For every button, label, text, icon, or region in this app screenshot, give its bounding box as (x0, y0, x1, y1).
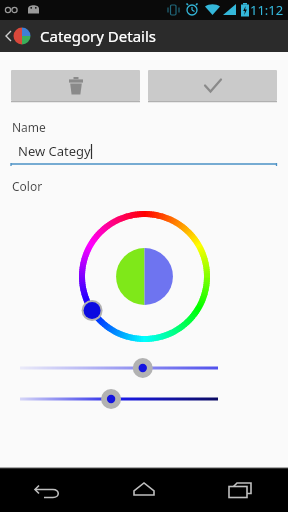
staticText: Color (12, 178, 43, 194)
staticText: Name (12, 119, 46, 135)
button[interactable]: Brightness (0, 388, 288, 410)
button[interactable]: Recent apps (192, 468, 288, 512)
staticText: New Categy (18, 142, 91, 160)
button[interactable]: Saturation (0, 357, 288, 379)
staticText: 11:12 (250, 1, 284, 19)
button[interactable]: Save (148, 70, 277, 101)
button[interactable]: Back (0, 468, 96, 512)
other: Navigate up (0, 20, 40, 52)
button[interactable]: Hue wheel (72, 204, 217, 349)
button[interactable]: Home (96, 468, 192, 512)
staticText: Category Details (40, 26, 156, 46)
button[interactable]: Delete (11, 70, 140, 101)
button[interactable]: New Categy (11, 142, 277, 166)
button[interactable]: Navigate up (0, 20, 288, 52)
